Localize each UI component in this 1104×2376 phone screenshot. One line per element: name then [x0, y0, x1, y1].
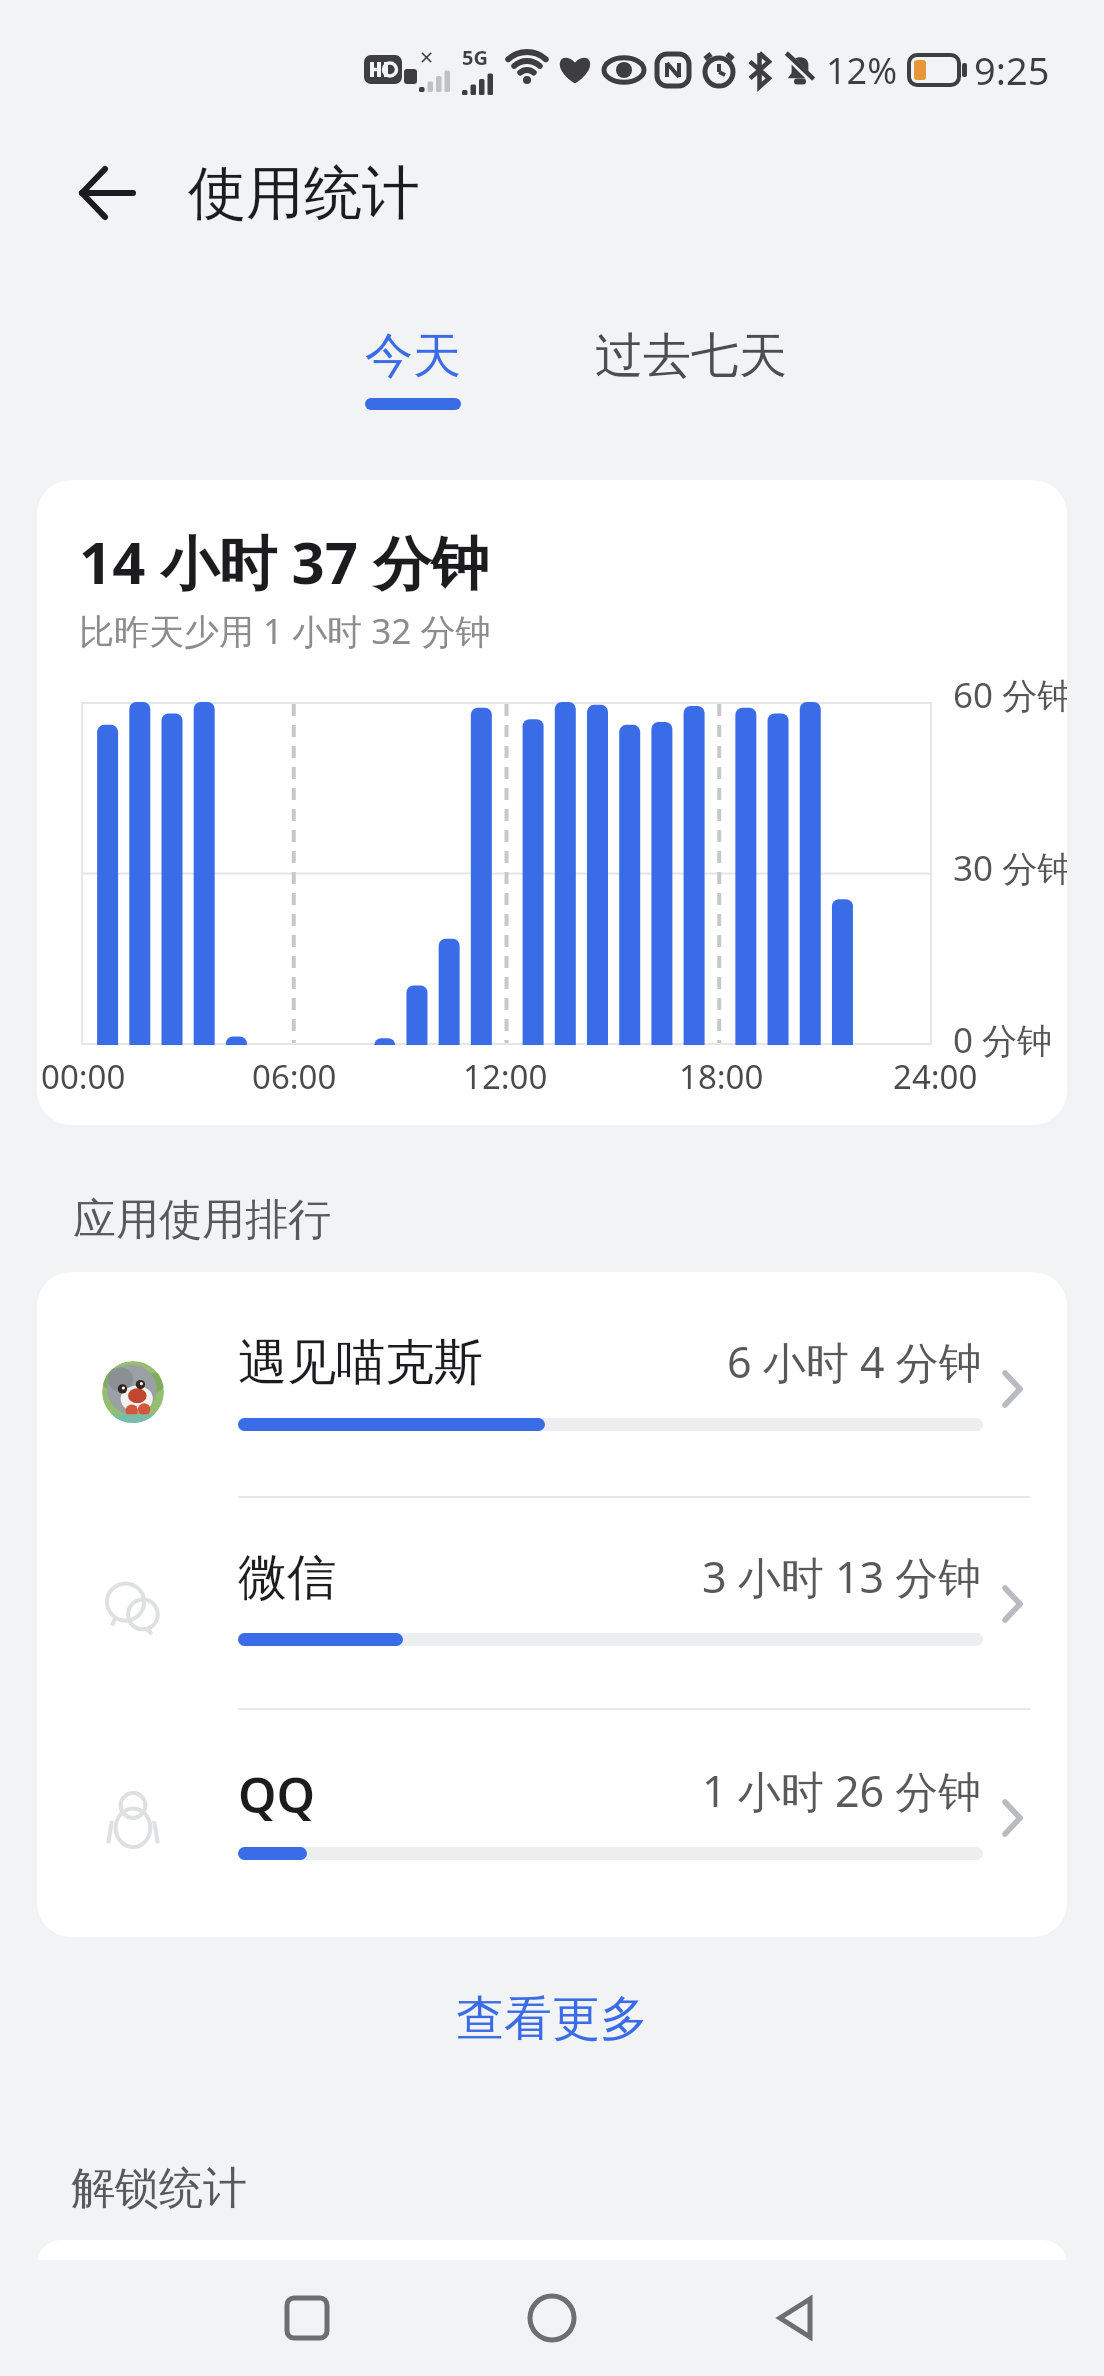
button[interactable]: 遇见喵克斯	[37, 1285, 1067, 1499]
staticText: 解锁统计	[71, 2161, 247, 2216]
staticText: 3 小时 13 分钟	[702, 1547, 982, 1606]
staticText: 14 小时 37 分钟	[79, 522, 489, 601]
button[interactable]: 微信	[37, 1500, 1067, 1714]
staticText: 5G	[462, 44, 488, 71]
staticText: ✕	[419, 47, 435, 68]
staticText: 1 小时 26 分钟	[702, 1761, 982, 1820]
staticText: 9:25	[974, 44, 1050, 96]
button[interactable]	[508, 2274, 596, 2362]
staticText: 60 分钟	[953, 671, 1067, 719]
staticText: 12%	[826, 46, 898, 95]
staticText: 今天	[365, 326, 461, 386]
staticText: 过去七天	[595, 326, 787, 386]
button[interactable]	[64, 158, 150, 228]
staticText: 应用使用排行	[73, 1193, 331, 1247]
staticText: 18:00	[679, 1054, 764, 1099]
staticText: 微信	[238, 1547, 336, 1609]
button[interactable]	[751, 2274, 839, 2362]
staticText: 6 小时 4 分钟	[727, 1332, 982, 1391]
button[interactable]: 今天	[274, 326, 552, 410]
staticText: 比昨天少用 1 小时 32 分钟	[79, 607, 491, 655]
button[interactable]: 查看更多	[438, 1981, 666, 2057]
staticText: 24:00	[893, 1054, 978, 1099]
button[interactable]: QQ	[37, 1714, 1067, 1928]
staticText: 00:00	[41, 1054, 126, 1099]
staticText: 遇见喵克斯	[238, 1332, 483, 1394]
button[interactable]: 过去七天	[552, 326, 830, 386]
staticText: 30 分钟	[953, 844, 1067, 892]
staticText: 0 分钟	[953, 1016, 1053, 1064]
staticText: 使用统计	[188, 157, 420, 230]
staticText: QQ	[238, 1761, 316, 1828]
staticText: 12:00	[463, 1054, 548, 1099]
button[interactable]	[263, 2274, 351, 2362]
staticText: 查看更多	[456, 1989, 648, 2049]
staticText: 06:00	[252, 1054, 337, 1099]
